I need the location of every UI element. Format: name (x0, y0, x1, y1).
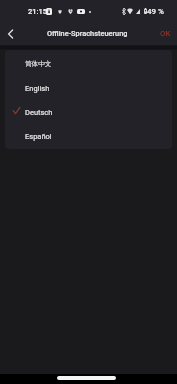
staticText: 21:15 (28, 7, 48, 16)
staticText: Español (25, 132, 52, 141)
staticText: 简体中文 (25, 60, 52, 68)
staticText: OK (160, 29, 171, 38)
staticText: English (25, 84, 50, 93)
staticText: 49 % (147, 7, 164, 16)
button[interactable]: Zurück (0, 23, 22, 45)
button[interactable]: Español (5, 124, 172, 148)
button[interactable]: Deutsch (5, 100, 172, 124)
staticText: Deutsch (25, 108, 53, 117)
button[interactable]: English (5, 76, 172, 100)
staticText: Offline-Sprachsteuerung (47, 29, 128, 38)
button[interactable]: OK (156, 25, 175, 42)
button[interactable]: 简体中文 (5, 52, 172, 76)
